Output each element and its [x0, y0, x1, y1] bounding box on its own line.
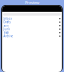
- staticText: Trash: [3, 31, 9, 34]
- staticText: Inbox: [3, 17, 11, 20]
- staticText: Preview: [25, 0, 39, 5]
- staticText: Drafts: [3, 20, 10, 24]
- staticText: Sent: [3, 24, 9, 27]
- staticText: Archive: [3, 34, 13, 38]
- staticText: Junk: [3, 27, 9, 31]
